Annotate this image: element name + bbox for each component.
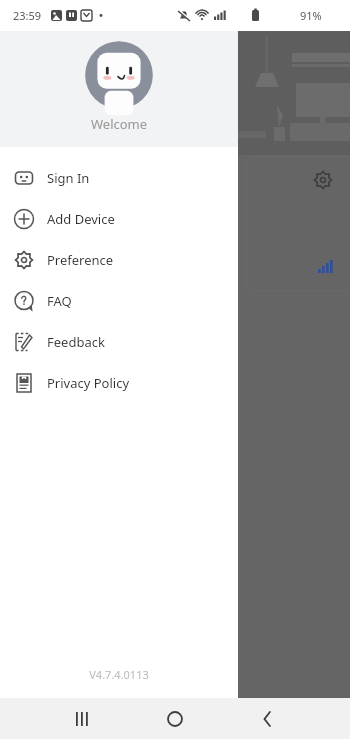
- button[interactable]: Feedback: [0, 321, 238, 362]
- button[interactable]: Privacy Policy: [0, 362, 238, 403]
- button[interactable]: Preference: [0, 239, 238, 280]
- staticText: Preference: [47, 251, 114, 269]
- button[interactable]: Sign In: [0, 157, 238, 198]
- button[interactable]: Welcome: [0, 31, 238, 147]
- staticText: Privacy Policy: [47, 374, 130, 392]
- staticText: Feedback: [47, 333, 105, 351]
- button[interactable]: Back: [248, 699, 288, 739]
- button[interactable]: Home: [155, 699, 195, 739]
- staticText: 23:59: [13, 8, 42, 23]
- button[interactable]: Add Device: [0, 198, 238, 239]
- staticText: 91%: [300, 8, 322, 23]
- staticText: Sign In: [47, 169, 90, 187]
- staticText: FAQ: [47, 292, 72, 310]
- staticText: V4.7.4.0113: [0, 667, 238, 682]
- staticText: Welcome: [91, 115, 148, 133]
- button[interactable]: FAQ: [0, 280, 238, 321]
- staticText: Add Device: [47, 210, 115, 228]
- button[interactable]: Recents: [62, 699, 102, 739]
